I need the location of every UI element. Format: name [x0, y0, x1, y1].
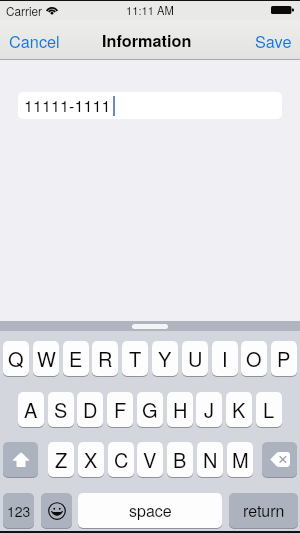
- staticText: Y: [158, 344, 172, 373]
- button[interactable]: Save: [248, 21, 299, 60]
- staticText: E: [69, 344, 83, 373]
- staticText: 11111-1111: [24, 93, 111, 116]
- staticText: G: [142, 395, 158, 424]
- button[interactable]: O: [241, 341, 267, 376]
- button[interactable]: Y: [152, 341, 178, 376]
- staticText: Q: [8, 344, 24, 373]
- staticText: T: [129, 344, 142, 373]
- staticText: P: [277, 344, 291, 373]
- staticText: Carrier: [6, 2, 43, 19]
- staticText: D: [83, 395, 98, 424]
- button[interactable]: M: [227, 442, 253, 477]
- staticText: return: [243, 499, 285, 522]
- staticText: B: [173, 445, 187, 474]
- button[interactable]: L: [256, 392, 282, 427]
- staticText: Z: [55, 445, 68, 474]
- staticText: C: [114, 445, 129, 474]
- button[interactable]: Shift: [3, 442, 38, 477]
- button[interactable]: Emoji keyboard: [41, 493, 72, 528]
- button[interactable]: space: [78, 493, 222, 528]
- button[interactable]: D: [77, 392, 103, 427]
- button[interactable]: I: [212, 341, 238, 376]
- button[interactable]: G: [137, 392, 163, 427]
- staticText: K: [232, 395, 246, 424]
- button[interactable]: F: [107, 392, 133, 427]
- button[interactable]: H: [167, 392, 193, 427]
- button[interactable]: W: [33, 341, 59, 376]
- staticText: J: [204, 395, 214, 424]
- staticText: L: [263, 395, 275, 424]
- staticText: Save: [255, 29, 292, 52]
- button[interactable]: C: [108, 442, 134, 477]
- button[interactable]: B: [167, 442, 193, 477]
- staticText: 11:11 AM: [126, 2, 174, 18]
- staticText: X: [84, 445, 98, 474]
- staticText: W: [37, 344, 56, 373]
- button[interactable]: 11111-1111: [18, 92, 282, 119]
- button[interactable]: A: [18, 392, 44, 427]
- button[interactable]: Z: [48, 442, 74, 477]
- button[interactable]: X: [78, 442, 104, 477]
- button[interactable]: E: [63, 341, 89, 376]
- staticText: H: [173, 395, 188, 424]
- staticText: N: [203, 445, 218, 474]
- button[interactable]: R: [92, 341, 118, 376]
- staticText: 123: [7, 501, 31, 521]
- staticText: M: [232, 445, 249, 474]
- staticText: Information: [102, 29, 192, 52]
- button[interactable]: J: [196, 392, 222, 427]
- staticText: space: [129, 499, 172, 522]
- button[interactable]: Backspace: [262, 442, 297, 477]
- staticText: I: [222, 344, 228, 373]
- staticText: O: [246, 344, 262, 373]
- staticText: A: [24, 395, 38, 424]
- button[interactable]: N: [197, 442, 223, 477]
- button[interactable]: K: [226, 392, 252, 427]
- staticText: U: [188, 344, 203, 373]
- button[interactable]: S: [48, 392, 74, 427]
- button[interactable]: U: [182, 341, 208, 376]
- button[interactable]: Hide keyboard: [132, 324, 168, 329]
- button[interactable]: P: [271, 341, 297, 376]
- staticText: R: [98, 344, 113, 373]
- button[interactable]: return: [229, 493, 298, 528]
- button[interactable]: Q: [3, 341, 29, 376]
- button[interactable]: V: [137, 442, 163, 477]
- staticText: Cancel: [9, 29, 60, 52]
- button[interactable]: T: [122, 341, 148, 376]
- button[interactable]: 123: [3, 493, 34, 528]
- staticText: V: [143, 445, 157, 474]
- staticText: S: [54, 395, 68, 424]
- button[interactable]: Cancel: [2, 21, 67, 60]
- staticText: F: [114, 395, 127, 424]
